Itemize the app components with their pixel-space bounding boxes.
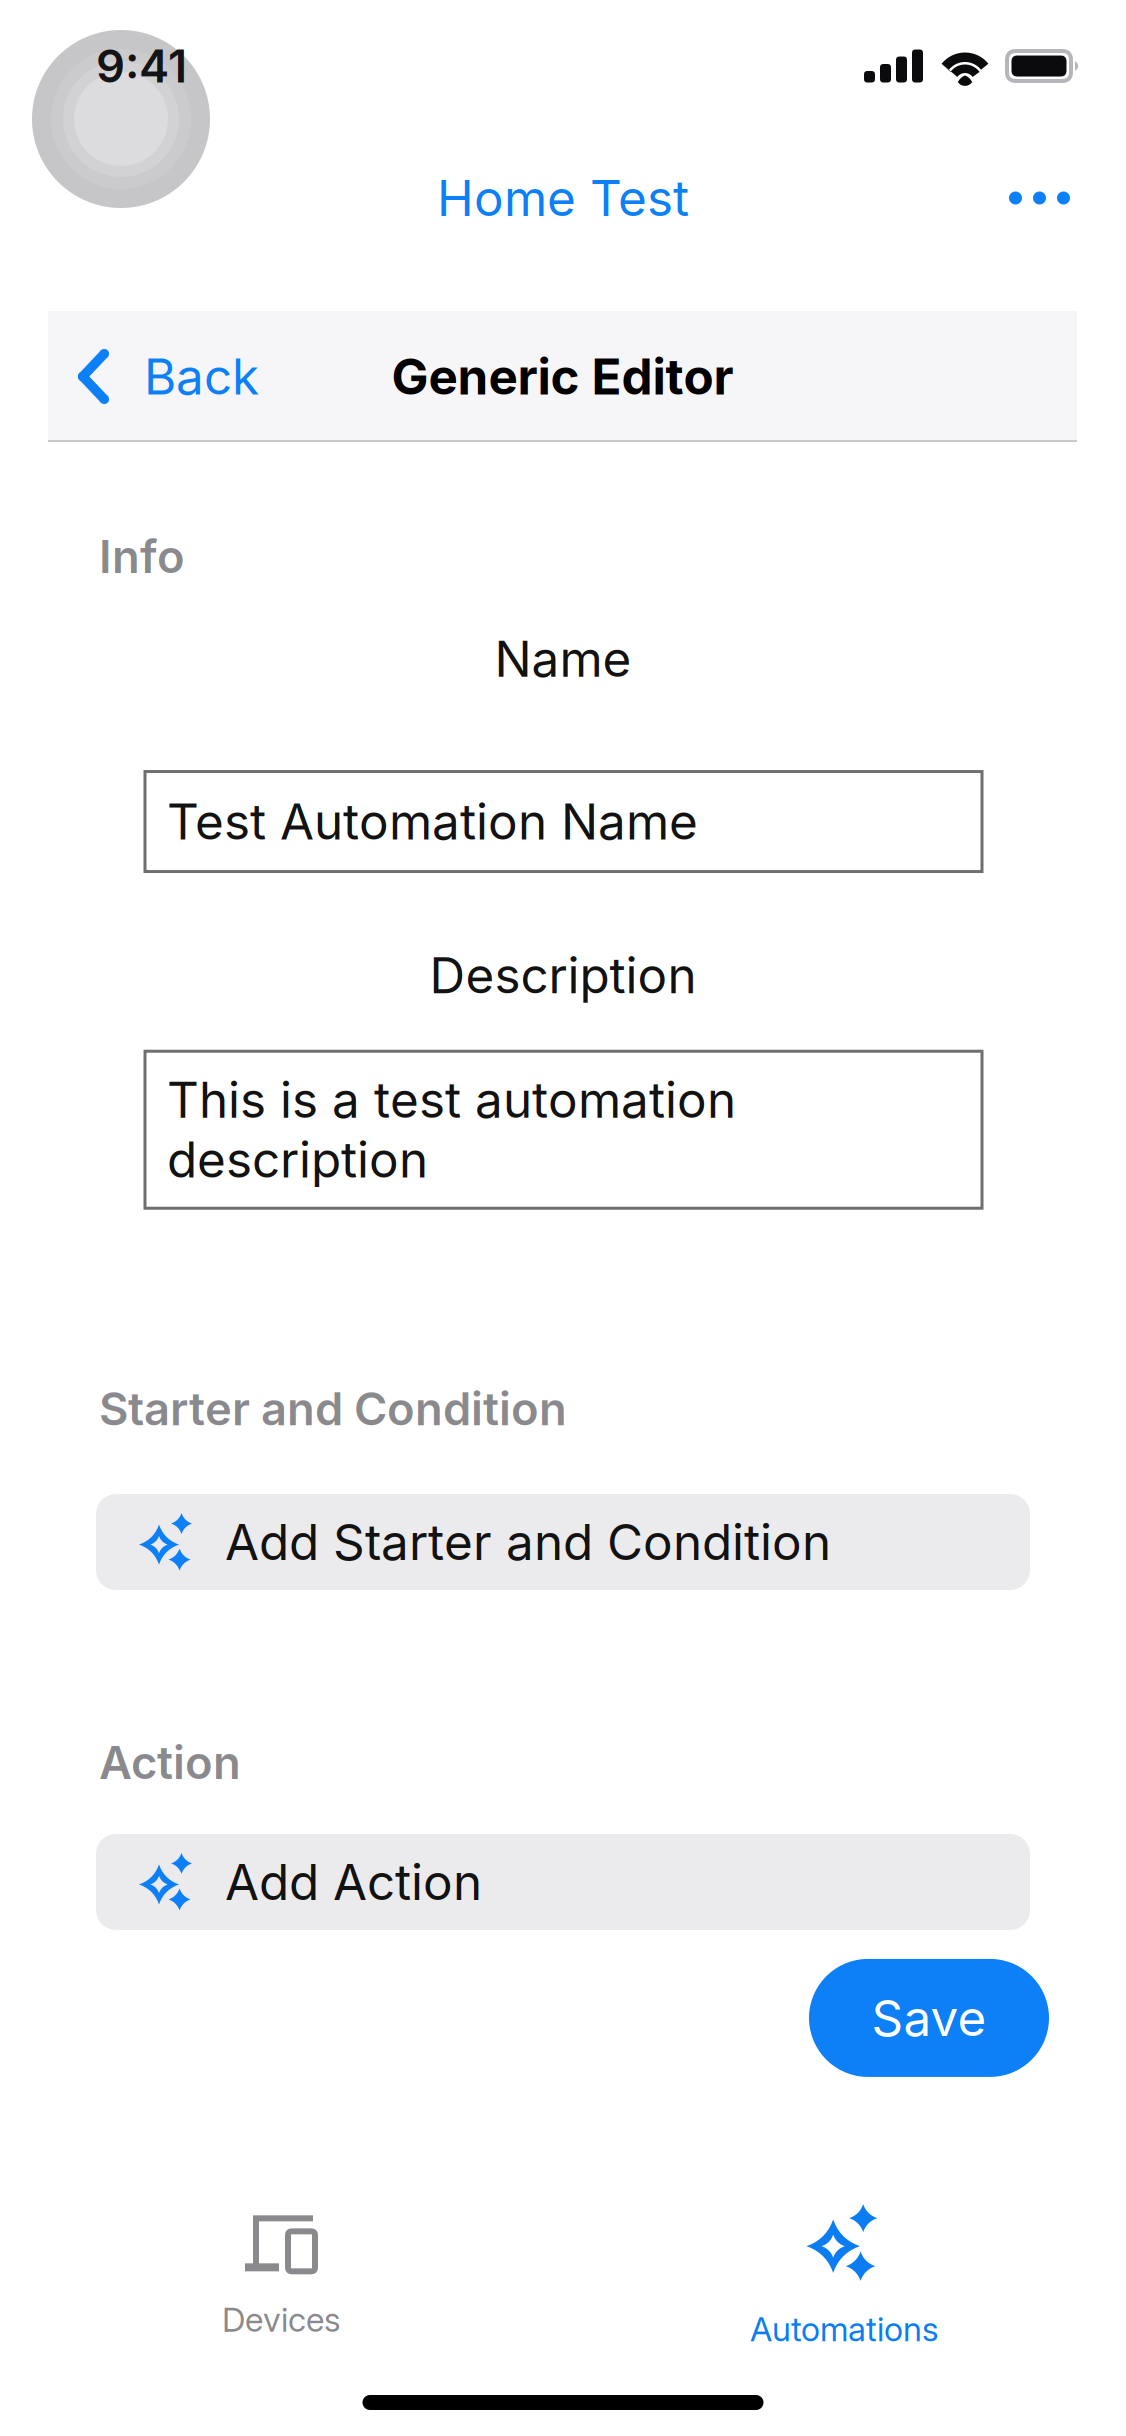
staticText: Save: [871, 1988, 986, 2048]
button[interactable]: Add Starter and Condition: [0, 1494, 1126, 1590]
staticText: Devices: [222, 2299, 341, 2340]
staticText: Name: [494, 629, 631, 689]
staticText: Test Automation Name: [167, 792, 698, 851]
staticText: This is a test automation description: [167, 1070, 736, 1189]
button[interactable]: Add Action: [0, 1834, 1126, 1930]
staticText: Back: [144, 347, 259, 406]
staticText: Starter and Condition: [99, 1381, 567, 1436]
staticText: Automations: [750, 2309, 939, 2349]
staticText: Generic Editor: [391, 347, 733, 406]
button[interactable]: Back: [48, 323, 259, 430]
staticText: Add Starter and Condition: [225, 1512, 831, 1572]
staticText: Action: [99, 1735, 241, 1790]
staticText: Home Test: [437, 168, 689, 228]
staticText: Description: [429, 945, 696, 1005]
staticText: Info: [99, 529, 185, 584]
staticText: Add Action: [225, 1852, 482, 1912]
staticText: 9:41: [96, 39, 187, 93]
button[interactable]: Automations: [563, 2207, 1126, 2347]
button[interactable]: Devices: [0, 2207, 563, 2347]
button[interactable]: Save: [809, 1959, 1049, 2077]
button[interactable]: More options: [983, 165, 1096, 230]
